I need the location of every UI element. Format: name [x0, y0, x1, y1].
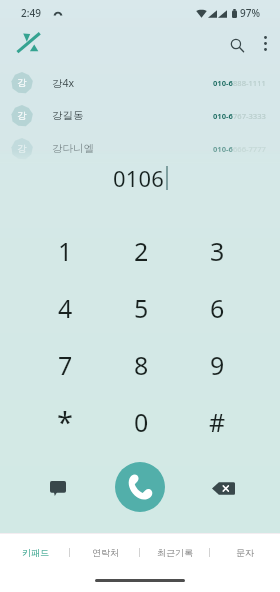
- staticText: 키패드: [22, 547, 49, 558]
- button[interactable]: 0: [103, 393, 179, 450]
- staticText: 문자: [236, 547, 254, 558]
- staticText: #: [209, 405, 226, 439]
- staticText: 강: [17, 110, 27, 122]
- staticText: 97%: [240, 6, 260, 20]
- button[interactable]: 연락처: [70, 539, 140, 566]
- staticText: 최근기록: [157, 547, 193, 558]
- staticText: 767-3333: [233, 111, 266, 121]
- staticText: 5: [134, 291, 149, 325]
- staticText: 0: [134, 405, 149, 439]
- staticText: 1: [58, 234, 73, 268]
- staticText: 강: [17, 77, 27, 89]
- staticText: 강길동: [52, 109, 84, 122]
- button[interactable]: 강: [0, 66, 280, 99]
- staticText: 강다니엘: [52, 142, 94, 155]
- staticText: 3: [210, 234, 225, 268]
- staticText: 2: [134, 234, 149, 268]
- button[interactable]: Message: [41, 471, 75, 505]
- button[interactable]: 7: [27, 336, 103, 393]
- staticText: 0106: [113, 163, 165, 193]
- button[interactable]: 8: [103, 336, 179, 393]
- staticText: 010-6: [213, 111, 233, 121]
- button[interactable]: Backspace: [206, 471, 240, 505]
- staticText: 6: [210, 291, 225, 325]
- button[interactable]: 최근기록: [140, 539, 210, 566]
- staticText: 7: [58, 348, 73, 382]
- staticText: 연락처: [92, 547, 119, 558]
- staticText: 010-6: [213, 78, 233, 88]
- staticText: 8: [134, 348, 149, 382]
- button[interactable]: 5: [103, 279, 179, 336]
- staticText: 4: [58, 291, 73, 325]
- button[interactable]: 4: [27, 279, 103, 336]
- button[interactable]: 3: [179, 222, 255, 279]
- button[interactable]: 키패드: [0, 539, 70, 566]
- button[interactable]: 2: [103, 222, 179, 279]
- button[interactable]: 1: [27, 222, 103, 279]
- button[interactable]: 문자: [210, 539, 280, 566]
- button[interactable]: 6: [179, 279, 255, 336]
- button[interactable]: 9: [179, 336, 255, 393]
- button[interactable]: More options: [251, 29, 279, 57]
- staticText: 9: [210, 348, 225, 382]
- staticText: *: [57, 402, 73, 441]
- staticText: 666-7777: [233, 144, 266, 154]
- button[interactable]: Call: [115, 462, 165, 512]
- staticText: 010-6: [213, 144, 233, 154]
- button[interactable]: #: [179, 393, 255, 450]
- button[interactable]: App logo: [16, 32, 40, 53]
- button[interactable]: 강: [0, 132, 280, 165]
- button[interactable]: Search: [221, 29, 253, 61]
- staticText: 2:49: [21, 6, 41, 20]
- button[interactable]: 강: [0, 99, 280, 132]
- staticText: 강4x: [52, 76, 75, 90]
- staticText: 강: [17, 143, 27, 155]
- button[interactable]: *: [27, 393, 103, 450]
- staticText: 888-1111: [233, 78, 266, 88]
